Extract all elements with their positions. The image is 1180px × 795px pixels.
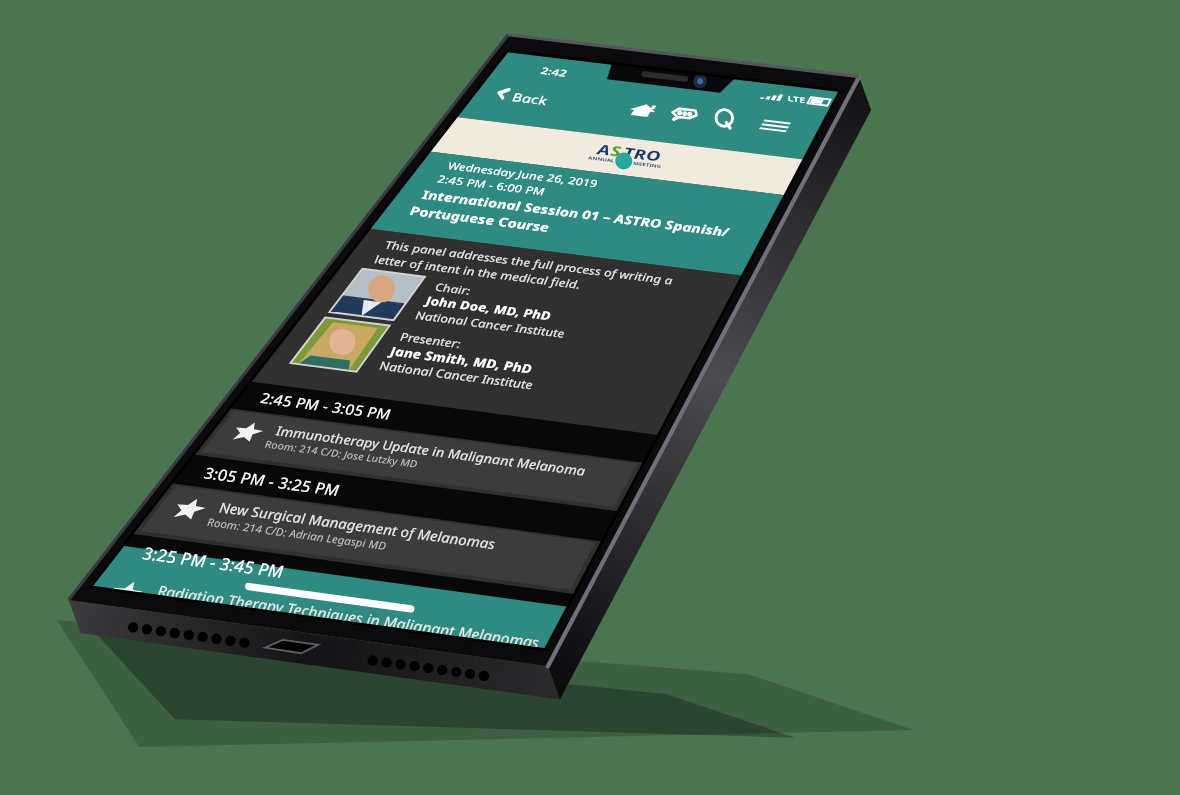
other: ASTRO session detail on phone bbox=[0, 0, 1180, 795]
